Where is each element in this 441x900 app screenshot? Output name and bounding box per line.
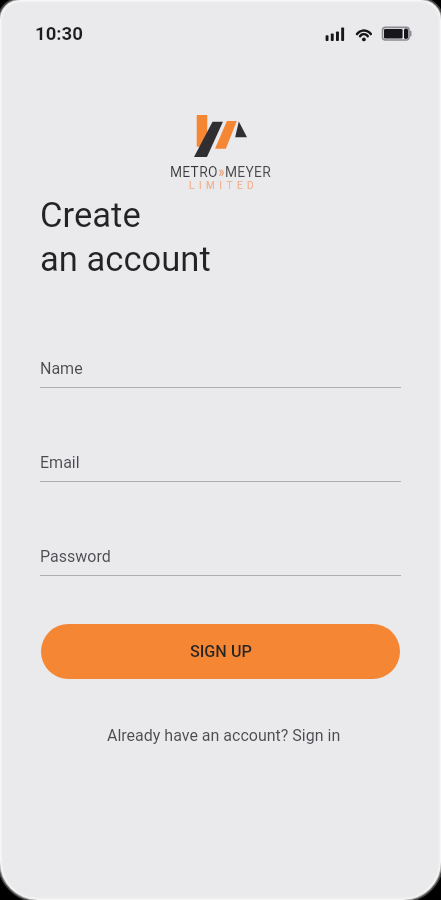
staticText: SIGN UP bbox=[190, 642, 252, 661]
button[interactable]: Password bbox=[40, 547, 401, 576]
staticText: MEYER bbox=[225, 164, 272, 180]
other: Cellular signal bbox=[325, 27, 345, 41]
staticText: Already have an account? Sign in bbox=[107, 726, 341, 745]
staticText: 10:30 bbox=[35, 23, 83, 45]
staticText: Password bbox=[40, 547, 111, 566]
other: Battery bbox=[382, 27, 412, 41]
button[interactable]: Name bbox=[40, 359, 401, 388]
staticText: Name bbox=[40, 359, 83, 378]
button[interactable]: SIGN UP bbox=[41, 624, 400, 679]
button[interactable]: Already have an account? Sign in bbox=[101, 723, 347, 748]
button[interactable]: Email bbox=[40, 453, 401, 482]
staticText: an account bbox=[40, 239, 211, 280]
other: Wi-Fi bbox=[356, 27, 372, 41]
staticText: Create bbox=[40, 195, 141, 236]
staticText: METRO bbox=[170, 164, 218, 180]
staticText: Email bbox=[40, 453, 80, 472]
staticText: LIMITED bbox=[189, 180, 259, 192]
